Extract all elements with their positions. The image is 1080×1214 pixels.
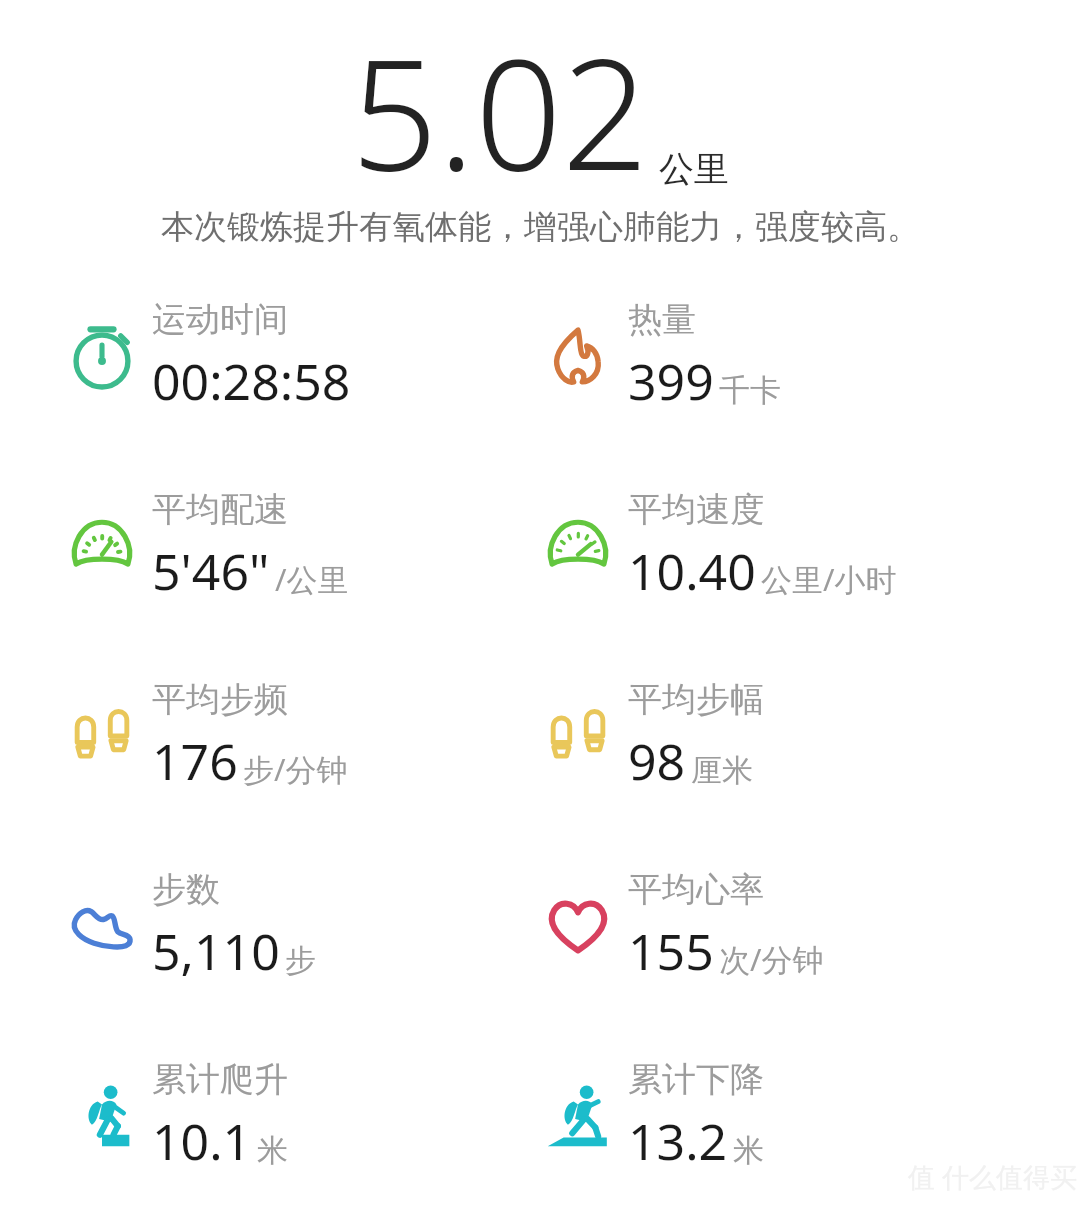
staticText: 10.1	[152, 1107, 252, 1175]
staticText: 本次锻炼提升有氧体能，增强心肺能力，强度较高。	[161, 206, 920, 248]
button[interactable]: Average heart rate	[542, 868, 962, 1018]
staticText: 步	[285, 941, 316, 980]
staticText: 10.40	[628, 537, 756, 605]
staticText: /公里	[275, 558, 349, 600]
staticText: 5'46"	[152, 537, 270, 605]
staticText: 平均步幅	[628, 678, 764, 721]
staticText: 公里	[659, 147, 729, 191]
staticText: 厘米	[691, 751, 753, 790]
button[interactable]: Total ascent	[66, 1058, 486, 1208]
button[interactable]: Average cadence	[66, 678, 486, 828]
staticText: 步/分钟	[243, 748, 348, 790]
staticText: 155	[628, 917, 714, 985]
staticText: 公里/小时	[761, 558, 897, 600]
staticText: 平均步频	[152, 678, 288, 721]
button[interactable]: Average stride	[542, 678, 962, 828]
staticText: 5,110	[152, 917, 280, 985]
staticText: 平均速度	[628, 488, 764, 531]
staticText: 累计下降	[628, 1058, 764, 1101]
staticText: 步数	[152, 868, 220, 911]
staticText: 次/分钟	[719, 938, 824, 980]
staticText: 399	[628, 347, 714, 415]
staticText: 运动时间	[152, 298, 288, 341]
staticText: 米	[257, 1131, 288, 1170]
staticText: 98	[628, 727, 686, 795]
button[interactable]: Duration	[66, 298, 486, 448]
staticText: 00:28:58	[152, 347, 351, 415]
staticText: 米	[733, 1131, 764, 1170]
staticText: 176	[152, 727, 238, 795]
staticText: 累计爬升	[152, 1058, 288, 1101]
staticText: 平均配速	[152, 488, 288, 531]
staticText: 值 什么值得买	[908, 1158, 1078, 1195]
button[interactable]: Steps	[66, 868, 486, 1018]
staticText: 平均心率	[628, 868, 764, 911]
staticText: 热量	[628, 298, 696, 341]
staticText: 千卡	[719, 371, 781, 410]
button[interactable]: Average speed	[542, 488, 962, 638]
staticText: 13.2	[628, 1107, 728, 1175]
button[interactable]: Average pace	[66, 488, 486, 638]
staticText: 5.02	[351, 8, 649, 215]
button[interactable]: Calories	[542, 298, 962, 448]
button[interactable]: Total descent	[542, 1058, 962, 1208]
